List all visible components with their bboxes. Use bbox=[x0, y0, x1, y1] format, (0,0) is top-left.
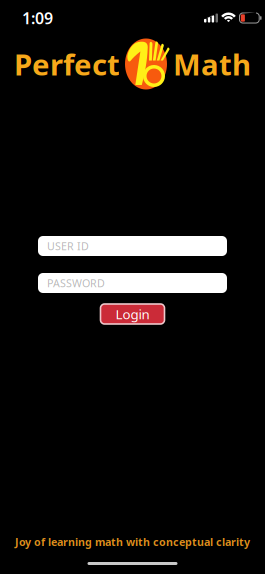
staticText: Math bbox=[173, 44, 251, 83]
staticText: USER ID bbox=[47, 239, 89, 253]
staticText: Joy of learning math with conceptual cla… bbox=[15, 535, 250, 549]
button[interactable]: Login bbox=[100, 304, 164, 324]
staticText: 1:09 bbox=[22, 7, 53, 29]
staticText: Login bbox=[115, 305, 149, 323]
button[interactable]: PASSWORD bbox=[38, 273, 227, 293]
staticText: Perfect bbox=[14, 44, 120, 83]
button[interactable]: USER ID bbox=[38, 236, 227, 256]
staticText: PASSWORD bbox=[47, 276, 105, 290]
